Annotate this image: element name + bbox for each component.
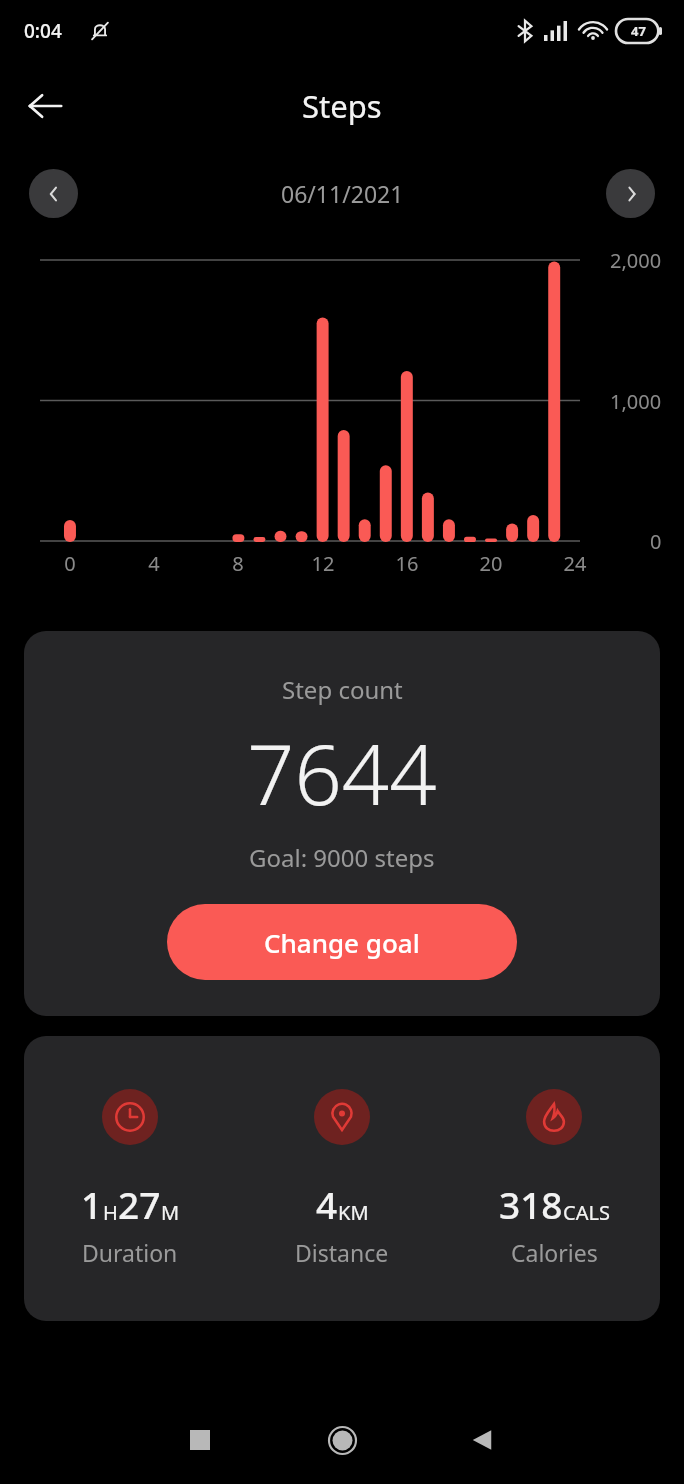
button[interactable]: Back (12, 73, 78, 139)
staticText: 20 (149, 550, 684, 577)
staticText: 12 (0, 550, 665, 577)
staticText: 7644 (247, 716, 437, 829)
staticText: 24 (233, 550, 684, 577)
staticText: 318 (499, 1179, 563, 1229)
staticText: 4 (0, 550, 496, 577)
staticText: 06/11/2021 (281, 178, 404, 209)
button[interactable]: Back (452, 1410, 512, 1470)
staticText: H (103, 1199, 118, 1226)
button[interactable]: 318 (448, 1089, 660, 1268)
staticText: 0:04 (24, 18, 62, 44)
staticText: Change goal (264, 925, 420, 960)
staticText: 1,000 (610, 388, 662, 415)
staticText: 8 (0, 550, 580, 577)
button[interactable]: Recents (170, 1410, 230, 1470)
staticText: Step count (282, 673, 403, 706)
button[interactable]: Change goal (167, 904, 517, 980)
staticText: 2,000 (610, 247, 662, 274)
staticText: 27 (118, 1179, 161, 1229)
button[interactable]: 4 (236, 1089, 448, 1268)
staticText: CALS (563, 1199, 610, 1226)
staticText: 47 (631, 22, 646, 40)
staticText: Duration (82, 1237, 178, 1268)
staticText: Steps (302, 85, 382, 127)
button[interactable]: Home (312, 1410, 372, 1470)
button[interactable]: 1 (24, 1089, 236, 1268)
button[interactable]: Next day (606, 169, 655, 218)
staticText: 16 (65, 550, 684, 577)
staticText: 1 (81, 1179, 103, 1229)
staticText: M (161, 1199, 180, 1226)
staticText: KM (338, 1199, 369, 1226)
staticText: Calories (511, 1237, 598, 1268)
button[interactable]: Previous day (29, 169, 78, 218)
staticText: 0 (650, 528, 662, 555)
staticText: Distance (295, 1237, 389, 1268)
staticText: Goal: 9000 steps (249, 841, 435, 874)
staticText: 0 (0, 550, 412, 577)
staticText: 4 (316, 1179, 338, 1229)
